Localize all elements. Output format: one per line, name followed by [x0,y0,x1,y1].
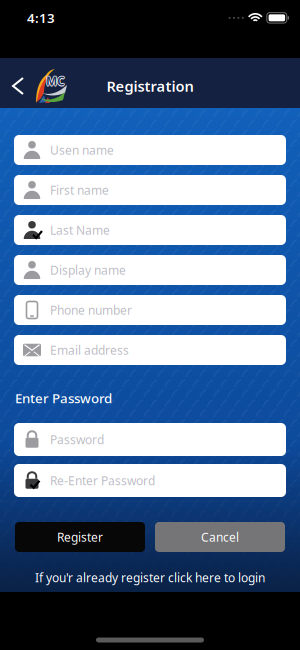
staticText: MC [45,73,64,89]
staticText: If you'r already register click here to … [35,569,265,585]
button[interactable]: Email address [14,335,286,365]
staticText: MC [47,73,66,89]
button[interactable]: Register [15,522,145,552]
button[interactable]: Cancel [155,522,285,552]
staticText: Re-Enter Password [50,472,155,488]
staticText: Email address [50,342,129,358]
staticText: Usen name [50,142,114,158]
staticText: Display name [50,262,126,278]
staticText: MC [46,73,65,89]
button[interactable]: Last Name [14,215,286,245]
button[interactable]: Re-Enter Password [14,464,286,497]
staticText: Phone number [50,302,132,318]
staticText: Password [50,431,104,447]
staticText: MC [46,72,65,88]
staticText: Enter Password [15,389,112,407]
button[interactable]: Display name [14,255,286,285]
button[interactable]: Phone number [14,295,286,325]
button[interactable]: If you'r already register click here to … [35,569,265,585]
staticText: Last Name [50,222,110,238]
button[interactable]: Back [0,78,33,94]
button[interactable]: Password [14,423,286,456]
button[interactable]: Usen name [14,135,286,165]
staticText: Cancel [201,529,239,545]
staticText: Register [57,529,103,545]
button[interactable]: First name [14,175,286,205]
staticText: 4:13 [27,9,55,27]
staticText: First name [50,182,109,198]
staticText: MC [46,74,65,90]
staticText: Registration [106,76,193,96]
